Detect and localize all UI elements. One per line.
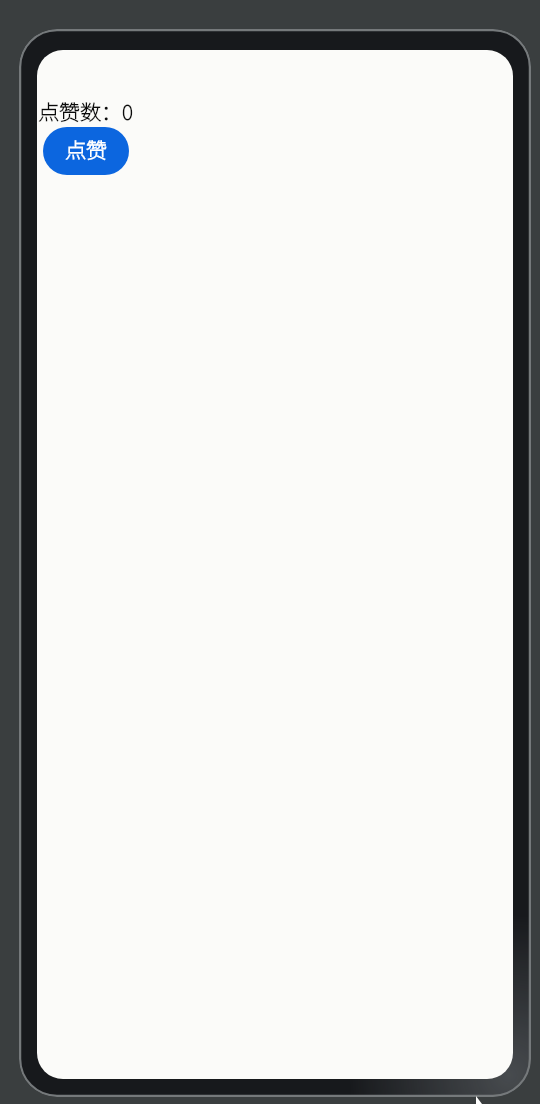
staticText: 点赞数：0 [38,96,133,126]
button[interactable]: 点赞 [43,127,129,175]
staticText: 点赞 [65,134,107,164]
